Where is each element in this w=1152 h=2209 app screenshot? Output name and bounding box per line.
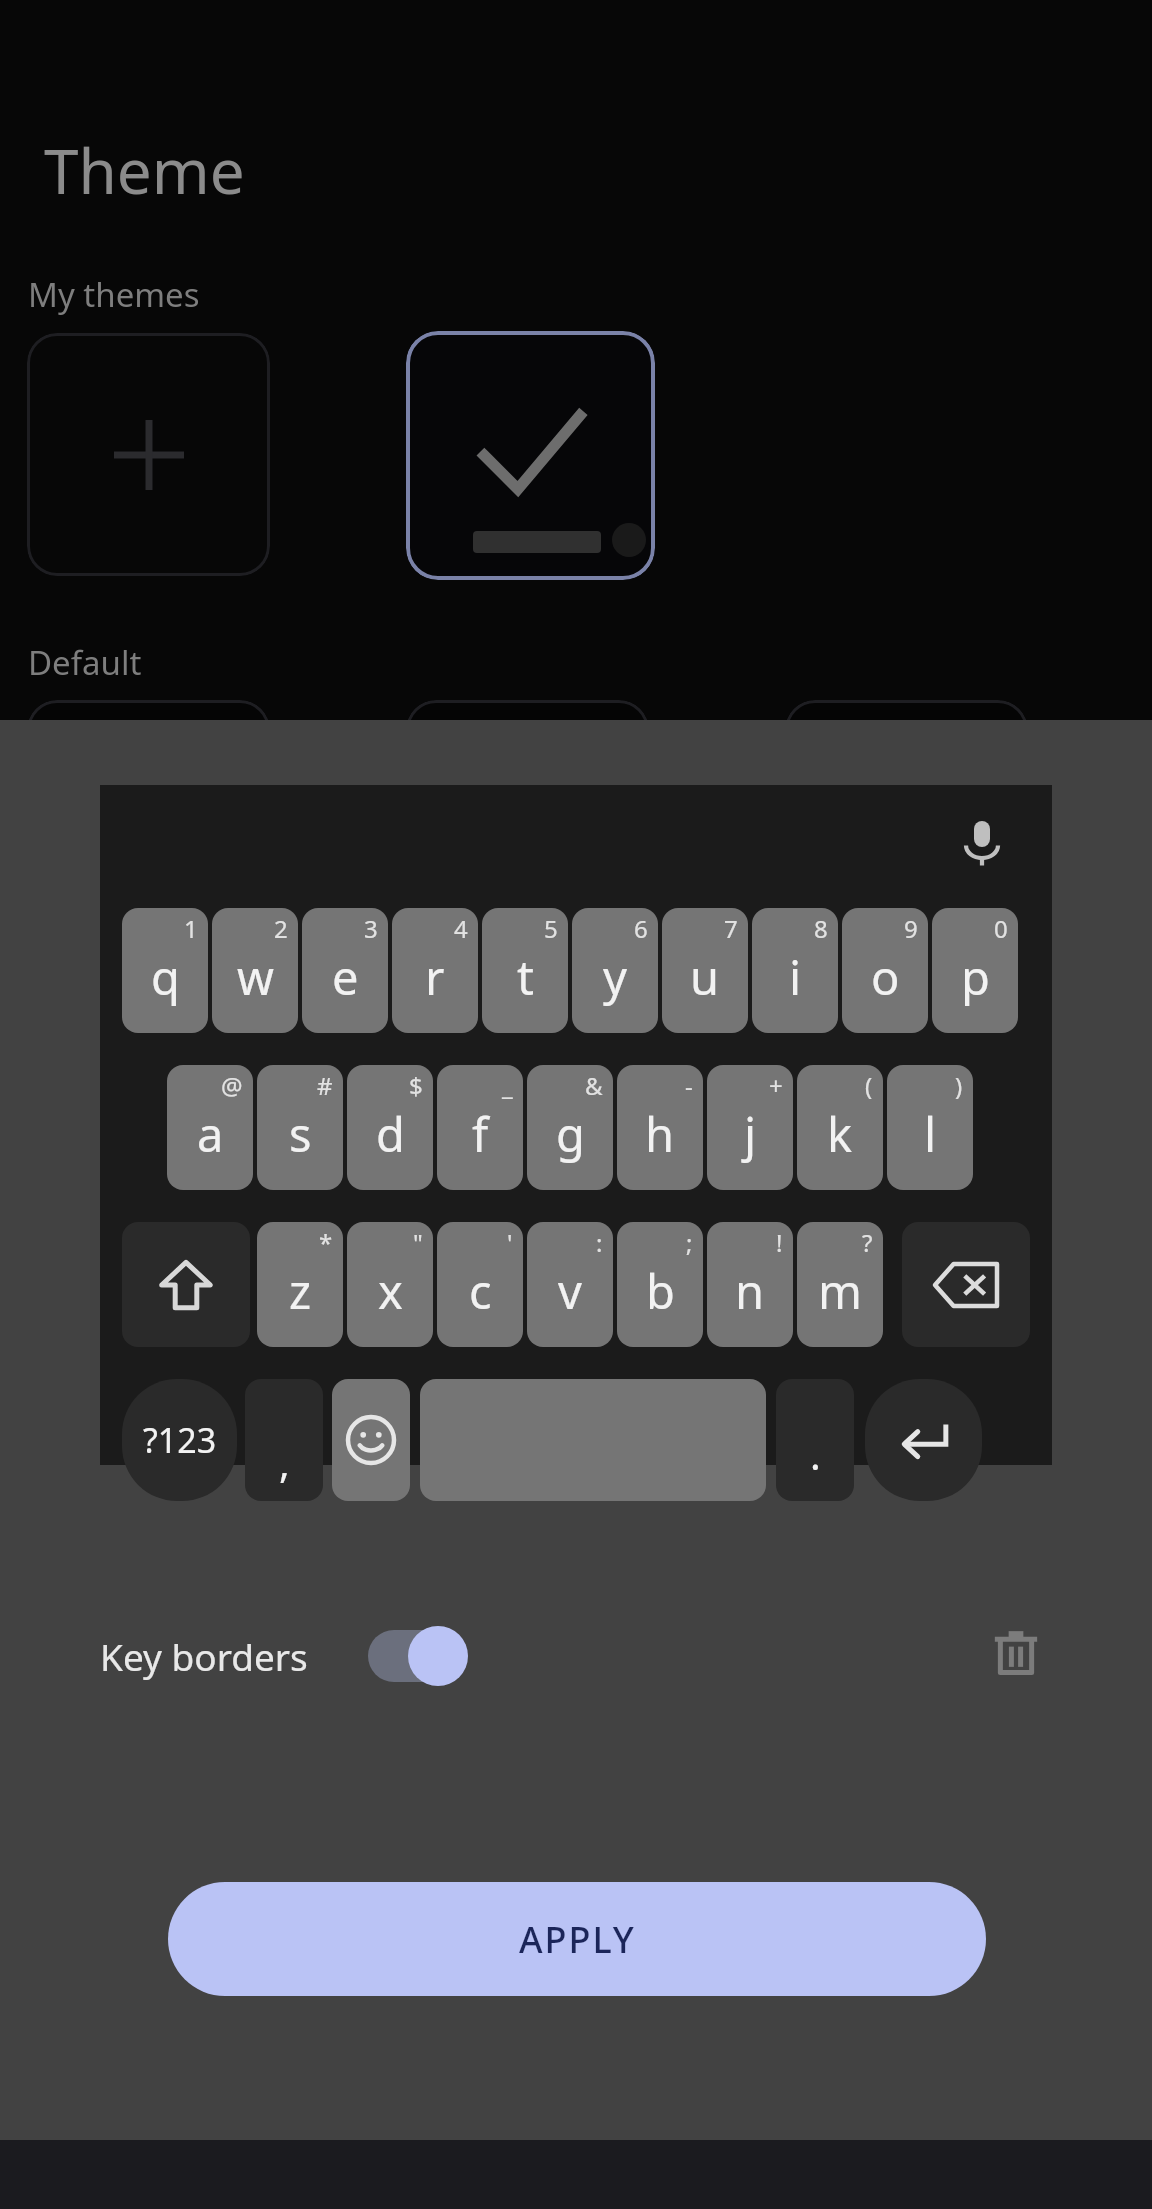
button[interactable]: $ bbox=[347, 1065, 433, 1190]
staticText: a bbox=[197, 1102, 224, 1166]
button[interactable]: Default theme bbox=[785, 700, 1028, 760]
staticText: " bbox=[413, 1226, 423, 1259]
staticText: 1 bbox=[184, 912, 198, 945]
button[interactable]: " bbox=[347, 1222, 433, 1347]
button[interactable]: ?123 bbox=[122, 1379, 237, 1501]
staticText: 2 bbox=[274, 912, 288, 945]
staticText: Default bbox=[28, 640, 142, 685]
button[interactable]: APPLY bbox=[168, 1882, 986, 1996]
button[interactable]: 1 bbox=[122, 908, 208, 1033]
staticText: : bbox=[596, 1226, 603, 1259]
staticText: Theme bbox=[44, 128, 245, 212]
staticText: # bbox=[317, 1069, 333, 1102]
staticText: b bbox=[646, 1259, 675, 1323]
button[interactable]: Enter bbox=[865, 1379, 982, 1501]
staticText: z bbox=[289, 1259, 312, 1323]
staticText: d bbox=[376, 1102, 405, 1166]
button[interactable]: Backspace bbox=[902, 1222, 1030, 1347]
button[interactable]: Delete theme bbox=[960, 1598, 1072, 1710]
button[interactable]: 8 bbox=[752, 908, 838, 1033]
staticText: t bbox=[517, 945, 534, 1009]
button[interactable]: Default theme bbox=[406, 700, 649, 760]
staticText: APPLY bbox=[519, 1915, 636, 1964]
staticText: s bbox=[289, 1102, 312, 1166]
button[interactable]: _ bbox=[437, 1065, 523, 1190]
button[interactable]: 5 bbox=[482, 908, 568, 1033]
staticText: 5 bbox=[544, 912, 558, 945]
staticText: My themes bbox=[28, 272, 200, 317]
button[interactable]: Shift bbox=[122, 1222, 250, 1347]
button[interactable]: Space bbox=[420, 1379, 766, 1501]
button[interactable]: Voice input bbox=[932, 793, 1032, 893]
button[interactable]: @ bbox=[167, 1065, 253, 1190]
button[interactable]: ? bbox=[797, 1222, 883, 1347]
staticText: 9 bbox=[904, 912, 918, 945]
button[interactable]: Selected theme bbox=[406, 331, 655, 580]
staticText: k bbox=[827, 1102, 853, 1166]
button[interactable]: . bbox=[776, 1379, 854, 1501]
button[interactable]: - bbox=[617, 1065, 703, 1190]
button[interactable]: ' bbox=[437, 1222, 523, 1347]
button[interactable]: 3 bbox=[302, 908, 388, 1033]
button[interactable]: 6 bbox=[572, 908, 658, 1033]
staticText: ; bbox=[686, 1226, 693, 1259]
staticText: e bbox=[332, 945, 359, 1009]
button[interactable]: Key borders bbox=[100, 1618, 468, 1694]
staticText: 3 bbox=[364, 912, 378, 945]
staticText: _ bbox=[502, 1069, 513, 1102]
staticText: 6 bbox=[634, 912, 648, 945]
button[interactable]: ) bbox=[887, 1065, 973, 1190]
staticText: n bbox=[735, 1259, 765, 1323]
staticText: ?123 bbox=[143, 1417, 217, 1463]
staticText: & bbox=[585, 1069, 603, 1102]
staticText: j bbox=[744, 1102, 757, 1166]
button[interactable]: ( bbox=[797, 1065, 883, 1190]
staticText: w bbox=[237, 945, 274, 1009]
staticText: 8 bbox=[814, 912, 828, 945]
button[interactable]: Emoji bbox=[332, 1379, 410, 1501]
staticText: 4 bbox=[454, 912, 468, 945]
staticText: p bbox=[961, 945, 990, 1009]
staticText: r bbox=[425, 945, 445, 1009]
button[interactable]: Default theme bbox=[27, 700, 270, 760]
staticText: o bbox=[871, 945, 900, 1009]
button[interactable]: : bbox=[527, 1222, 613, 1347]
staticText: ? bbox=[862, 1226, 873, 1259]
staticText: l bbox=[924, 1102, 937, 1166]
staticText: x bbox=[378, 1259, 403, 1323]
button[interactable]: 0 bbox=[932, 908, 1018, 1033]
staticText: c bbox=[469, 1259, 492, 1323]
staticText: @ bbox=[221, 1069, 243, 1102]
button[interactable]: 7 bbox=[662, 908, 748, 1033]
staticText: ! bbox=[776, 1226, 783, 1259]
button[interactable]: 2 bbox=[212, 908, 298, 1033]
button[interactable]: ! bbox=[707, 1222, 793, 1347]
staticText: y bbox=[603, 945, 627, 1009]
staticText: 7 bbox=[724, 912, 738, 945]
staticText: ) bbox=[955, 1069, 963, 1102]
staticText: i bbox=[789, 945, 802, 1009]
staticText: - bbox=[685, 1069, 693, 1102]
button[interactable]: * bbox=[257, 1222, 343, 1347]
button[interactable]: + bbox=[707, 1065, 793, 1190]
staticText: Key borders bbox=[100, 1631, 308, 1681]
staticText: , bbox=[279, 1435, 290, 1489]
staticText: q bbox=[151, 945, 180, 1009]
staticText: . bbox=[810, 1427, 821, 1481]
button[interactable]: Key borders toggle bbox=[368, 1618, 468, 1694]
staticText: g bbox=[556, 1102, 585, 1166]
staticText: ( bbox=[865, 1069, 873, 1102]
button[interactable]: 4 bbox=[392, 908, 478, 1033]
button[interactable]: # bbox=[257, 1065, 343, 1190]
button[interactable]: ; bbox=[617, 1222, 703, 1347]
staticText: v bbox=[558, 1259, 582, 1323]
button[interactable]: Add theme bbox=[27, 333, 270, 576]
staticText: + bbox=[769, 1069, 783, 1102]
staticText: ' bbox=[507, 1226, 513, 1259]
button[interactable]: 9 bbox=[842, 908, 928, 1033]
button[interactable]: , bbox=[245, 1379, 323, 1501]
staticText: m bbox=[818, 1259, 862, 1323]
staticText: f bbox=[472, 1102, 489, 1166]
button[interactable]: & bbox=[527, 1065, 613, 1190]
staticText: 0 bbox=[994, 912, 1008, 945]
